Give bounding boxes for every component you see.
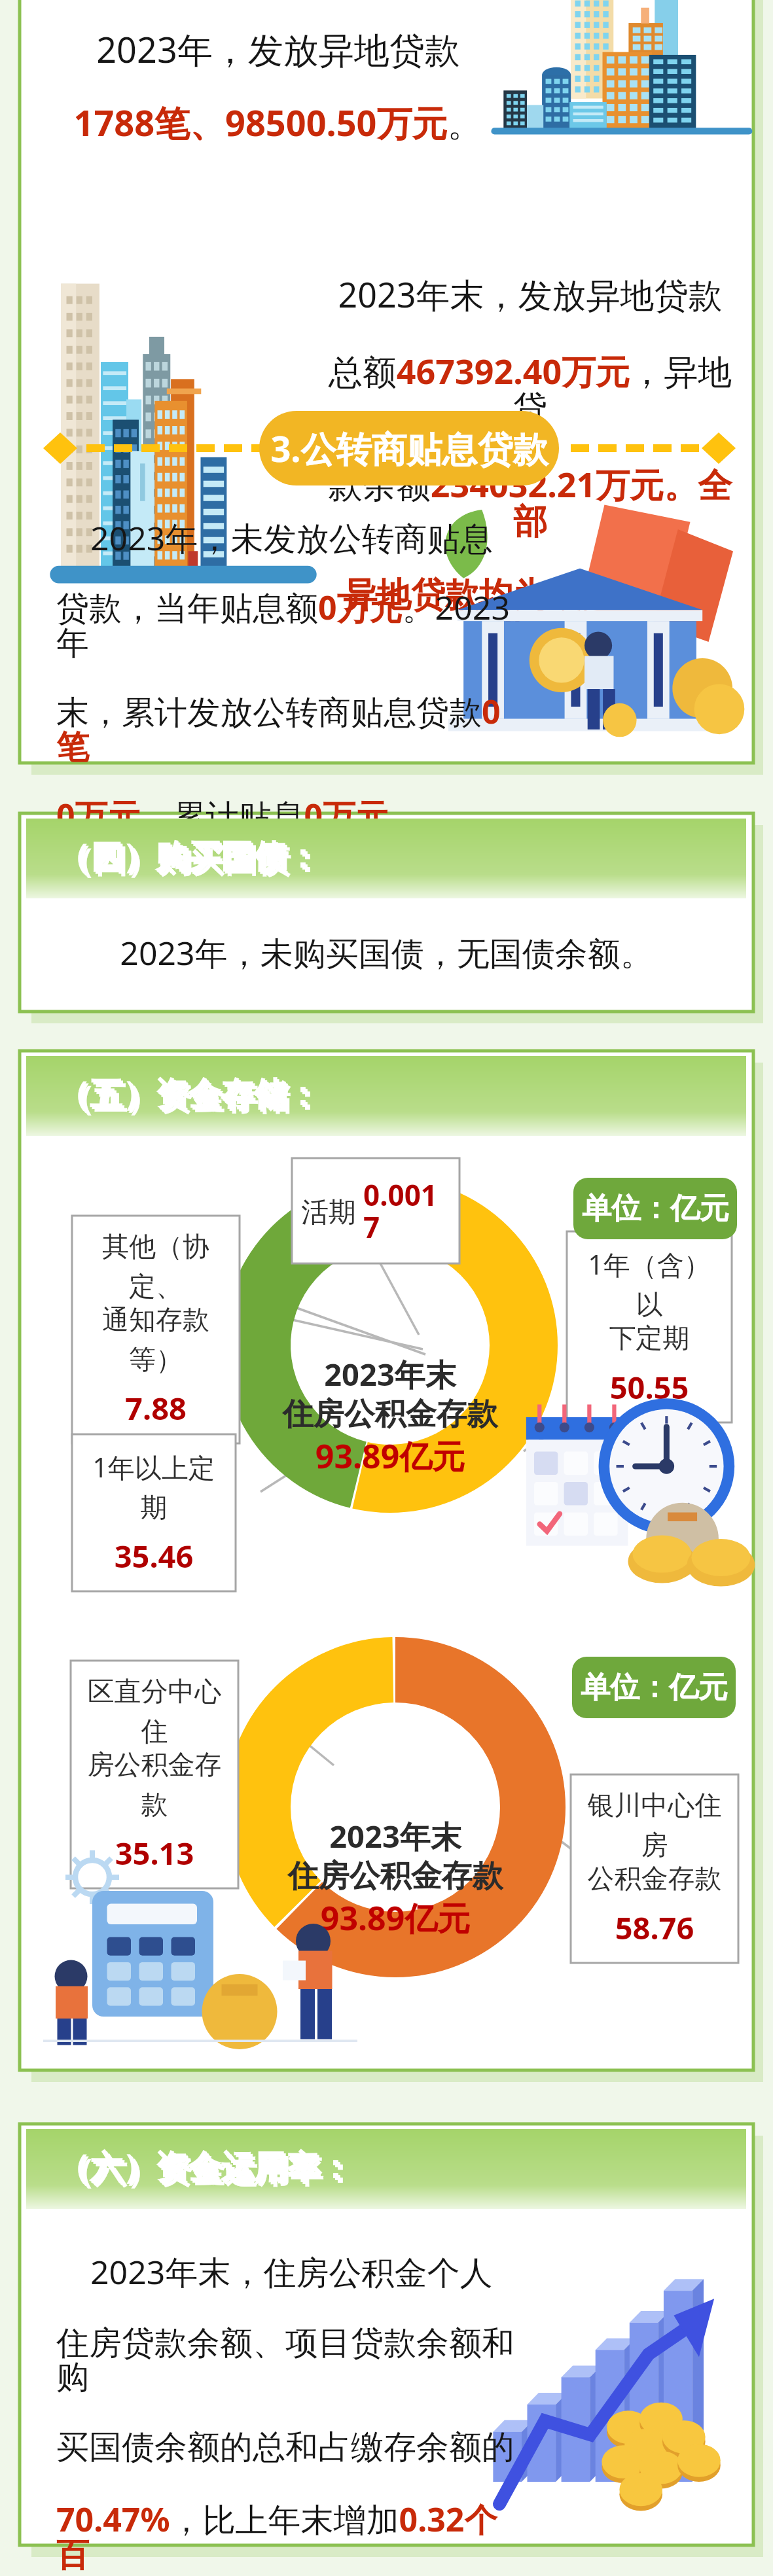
staticText: 2023年，发放异地贷款 [65, 25, 491, 73]
staticText: 下定期 [575, 1322, 724, 1356]
staticText: 2023年，未发放公转商贴息 [56, 516, 493, 560]
staticText: 93.89亿元 [225, 1896, 566, 1940]
other: 计算器与资金插图 [37, 1852, 364, 2048]
staticText: 1年（含）以 [575, 1246, 724, 1322]
staticText: 买国债余额的总和占缴存余额的 [56, 2427, 514, 2468]
other: 增长柱状图插图 [482, 2238, 734, 2515]
staticText: 93.89亿元 [223, 1434, 558, 1478]
staticText: 末，累计发放公转商贴息贷款0笔 [56, 689, 514, 768]
button[interactable]: 1年以上定期 [80, 1449, 228, 1577]
button[interactable]: （四）购买国债： [26, 819, 746, 898]
staticText: 区直分中心住 [79, 1675, 230, 1748]
staticText: 贷款，当年贴息额0万元。2023年 [56, 585, 514, 664]
staticText: 50.55 [575, 1366, 724, 1408]
staticText: （四）购买国债： [59, 838, 321, 879]
staticText: （四）购买国债： [57, 836, 319, 877]
button[interactable]: （六）资金运用率： [26, 2129, 746, 2209]
staticText: 0.0017 [363, 1175, 450, 1246]
staticText: 房公积金存款 [79, 1748, 230, 1822]
staticText: 通知存款等） [80, 1303, 232, 1377]
staticText: （五）资金存储： [57, 1074, 319, 1115]
staticText: 住房公积金存款 [223, 1395, 558, 1434]
button[interactable]: 单位：亿元 [573, 1178, 737, 1239]
other: 银行与资金插图 [427, 500, 733, 745]
staticText: 异地贷款均为银川中心发放。 [327, 574, 733, 653]
button[interactable]: 其他（协定、 [80, 1230, 232, 1429]
staticText: （六）资金运用率： [57, 2147, 351, 2188]
button[interactable]: 区直分中心住 [79, 1675, 230, 1874]
staticText: （五）资金存储： [62, 1078, 323, 1120]
staticText: 2023年末 [225, 1815, 566, 1857]
staticText: 70.47%，比上年末增加0.32个百 [56, 2497, 514, 2576]
button[interactable]: 1年（含）以 [575, 1246, 724, 1408]
staticText: 1年以上定期 [80, 1449, 228, 1525]
staticText: （五）资金存储： [59, 1076, 321, 1117]
other: 城市建筑插图 [486, 0, 761, 135]
other: 城市建筑插图 [46, 277, 321, 590]
staticText: 2023年末，住房公积金个人 [56, 2250, 493, 2294]
staticText: 7.88 [80, 1387, 232, 1429]
staticText: 活期 [301, 1192, 363, 1229]
staticText: 公积金存款 [579, 1862, 730, 1896]
button[interactable]: 单位：亿元 [572, 1657, 736, 1718]
staticText: 1788笔、98500.50万元。 [65, 98, 491, 147]
staticText: 款余额234032.21万元。全部 [327, 461, 733, 544]
staticText: （四）购买国债： [62, 841, 323, 882]
button[interactable]: （五）资金存储： [26, 1056, 746, 1136]
staticText: （六）资金运用率： [62, 2151, 356, 2193]
staticText: 总额467392.40万元，异地贷 [327, 347, 733, 431]
staticText: 35.13 [79, 1832, 230, 1874]
staticText: 35.46 [80, 1535, 228, 1577]
other: 时钟与日历插图 [517, 1374, 744, 1570]
button[interactable]: 3.公转商贴息贷款 [259, 411, 559, 485]
button[interactable]: 银川中心住房 [579, 1789, 730, 1949]
staticText: 单位：亿元 [581, 1669, 728, 1706]
staticText: 0万元，累计贴息0万元。 [56, 793, 422, 838]
staticText: 3.公转商贴息贷款 [270, 424, 548, 472]
staticText: 2023年，未购买国债，无国债余额。 [120, 930, 653, 975]
staticText: 其他（协定、 [80, 1230, 232, 1303]
staticText: （六）资金运用率： [59, 2149, 353, 2190]
staticText: 2023年末 [223, 1353, 558, 1395]
staticText: 银川中心住房 [579, 1789, 730, 1862]
staticText: 58.76 [579, 1907, 730, 1949]
button[interactable]: 活期 [301, 1175, 450, 1246]
staticText: 2023年末，发放异地贷款 [327, 271, 733, 317]
staticText: 住房贷款余额、项目贷款余额和购 [56, 2323, 514, 2398]
staticText: 住房公积金存款 [225, 1857, 566, 1896]
staticText: 单位：亿元 [582, 1190, 729, 1227]
